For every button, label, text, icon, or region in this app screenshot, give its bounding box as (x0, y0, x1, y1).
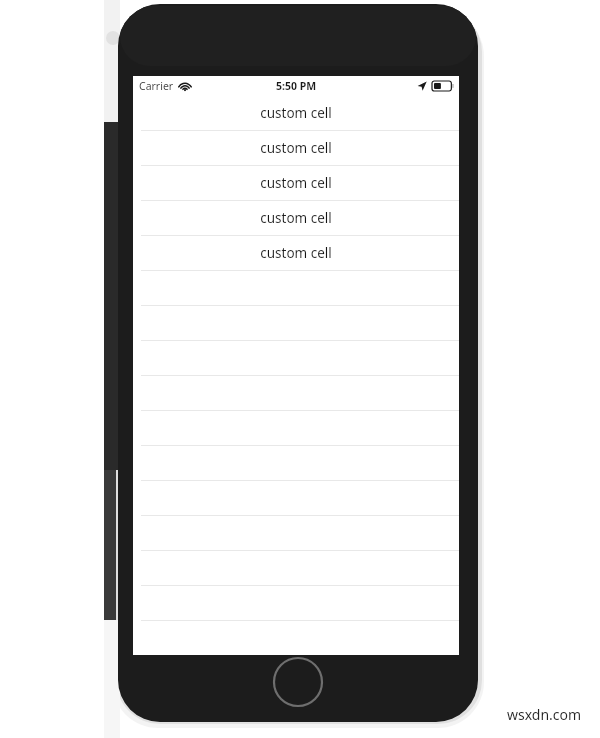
button[interactable] (133, 516, 459, 551)
button[interactable] (133, 306, 459, 341)
button[interactable] (133, 341, 459, 376)
button[interactable] (133, 376, 459, 411)
button[interactable]: custom cell (133, 166, 459, 201)
button[interactable]: custom cell (133, 96, 459, 131)
button[interactable] (133, 411, 459, 446)
button[interactable]: Home (270, 654, 326, 710)
staticText: custom cell (260, 139, 332, 157)
button[interactable] (133, 481, 459, 516)
button[interactable] (133, 551, 459, 586)
staticText: custom cell (260, 244, 332, 262)
staticText: wsxdn.com (507, 705, 582, 724)
staticText: custom cell (260, 104, 332, 122)
staticText: Carrier (139, 79, 174, 93)
staticText: 5:50 PM (276, 79, 317, 93)
button[interactable] (133, 586, 459, 621)
button[interactable]: custom cell (133, 201, 459, 236)
button[interactable]: custom cell (133, 236, 459, 271)
staticText: custom cell (260, 174, 332, 192)
button[interactable]: custom cell (133, 131, 459, 166)
button[interactable] (133, 271, 459, 306)
staticText: custom cell (260, 209, 332, 227)
button[interactable] (133, 446, 459, 481)
